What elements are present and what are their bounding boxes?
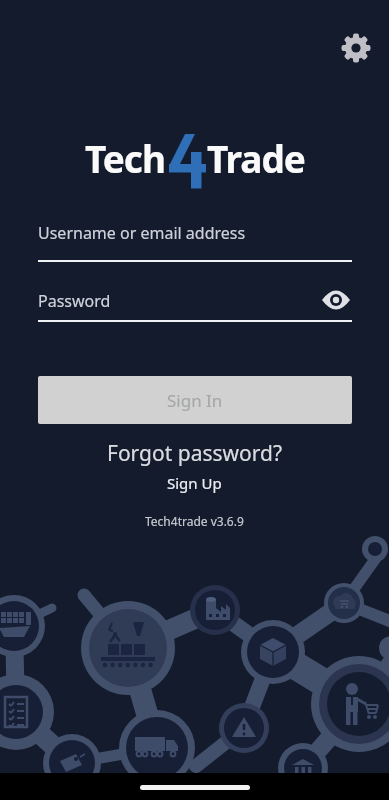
staticText: Trade	[207, 133, 305, 183]
staticText: Sign Up	[167, 473, 222, 493]
button[interactable]: Sign In	[38, 376, 352, 424]
staticText: Username or email address	[38, 222, 246, 244]
button[interactable]	[322, 290, 350, 310]
staticText: Tech4trade v3.6.9	[145, 513, 244, 529]
button[interactable]: Username or email address	[38, 218, 352, 262]
staticText: Sign In	[167, 389, 223, 412]
button[interactable]: Forgot password?	[107, 439, 283, 468]
button[interactable]: Sign Up	[167, 473, 222, 493]
staticText: Password	[38, 290, 111, 312]
staticText: Forgot password?	[107, 439, 283, 468]
staticText: Tech	[85, 133, 165, 183]
button[interactable]	[338, 30, 374, 66]
button[interactable]: Password	[38, 278, 352, 322]
